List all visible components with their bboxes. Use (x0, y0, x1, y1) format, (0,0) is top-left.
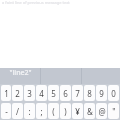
button[interactable]: Key ( (48, 103, 59, 119)
button[interactable]: "line2" (0, 68, 40, 78)
staticText: ¥ (75, 106, 80, 117)
button[interactable]: Key @ (96, 103, 107, 119)
staticText: 0 (111, 88, 116, 99)
staticText: 3 (27, 88, 32, 99)
button[interactable]: Key 0 (108, 85, 119, 101)
button[interactable]: Key 3 (24, 85, 35, 101)
button[interactable]: Key : (24, 103, 35, 119)
button[interactable]: Key 9 (96, 85, 107, 101)
button[interactable]: Key & (84, 103, 95, 119)
staticText: a faint line of previous message text (2, 0, 70, 5)
button[interactable]: Key 1 (1, 85, 11, 101)
staticText: 9 (99, 88, 104, 99)
staticText: ( (52, 106, 55, 117)
staticText: - (5, 106, 8, 117)
staticText: 8 (87, 88, 92, 99)
button[interactable]: Key ) (60, 103, 71, 119)
button[interactable]: Key 4 (36, 85, 47, 101)
button[interactable]: Key 7 (72, 85, 83, 101)
staticText: ) (64, 106, 67, 117)
staticText: & (87, 106, 93, 117)
staticText: 1 (4, 88, 9, 99)
button[interactable]: Key 8 (84, 85, 95, 101)
staticText: 5 (51, 88, 56, 99)
staticText: : (28, 106, 31, 117)
staticText: ; (40, 106, 43, 117)
button[interactable]: Key 6 (60, 85, 71, 101)
staticText: @ (98, 106, 106, 117)
button[interactable]: Key ; (36, 103, 47, 119)
staticText: " (112, 106, 116, 117)
button[interactable]: Key " (108, 103, 119, 119)
staticText: 4 (39, 88, 44, 99)
staticText: / (16, 106, 19, 117)
button[interactable]: Key 2 (12, 85, 23, 101)
staticText: 2 (15, 88, 20, 99)
button[interactable]: Key 5 (48, 85, 59, 101)
button[interactable]: Key - (1, 103, 11, 119)
staticText: 7 (75, 88, 80, 99)
staticText: "line2" (9, 68, 32, 78)
button[interactable]: Key ¥ (72, 103, 83, 119)
staticText: 6 (63, 88, 68, 99)
button[interactable]: Key / (12, 103, 23, 119)
